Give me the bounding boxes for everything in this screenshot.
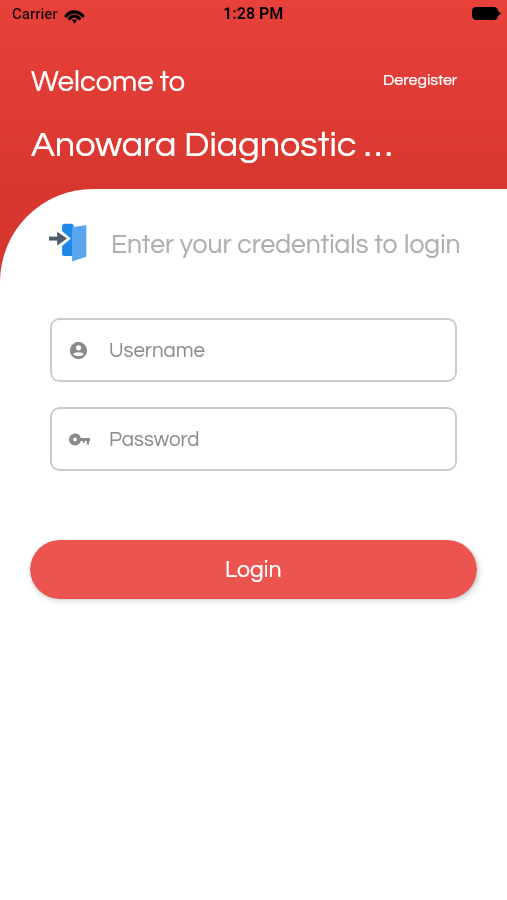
staticText: Carrier (12, 5, 58, 23)
other: Login (49, 223, 87, 261)
staticText: Anowara Diagnostic … (31, 126, 393, 163)
staticText: Welcome to (31, 67, 186, 97)
staticText: Deregister (383, 72, 458, 88)
button[interactable]: Username (50, 318, 457, 382)
staticText: Login (225, 558, 282, 582)
other: Battery (472, 7, 501, 20)
staticText: Password (109, 429, 200, 450)
button[interactable]: Login (30, 540, 477, 599)
button[interactable]: Password (50, 407, 457, 471)
staticText: Enter your credentials to login (111, 231, 461, 258)
staticText: Username (109, 340, 205, 361)
button[interactable]: Deregister (375, 66, 466, 94)
staticText: 1:28 PM (223, 4, 284, 23)
